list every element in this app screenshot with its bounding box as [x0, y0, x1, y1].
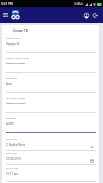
staticText: TD Start Time	[6, 167, 19, 170]
staticText: 2. Nakka Mont	[6, 143, 26, 147]
button[interactable]	[6, 75, 96, 92]
staticText: Email Mobile Number	[6, 97, 26, 100]
staticText: Process date	[6, 152, 18, 155]
staticText: Select Mode	[6, 138, 17, 141]
button[interactable]	[6, 165, 96, 181]
staticText: 27/06/2019	[6, 157, 21, 161]
staticText: Operator id	[6, 117, 17, 120]
button[interactable]: App logo	[12, 10, 19, 19]
button[interactable]	[6, 115, 96, 132]
staticText: 5:13 PM	[1, 2, 13, 6]
button[interactable]	[6, 55, 96, 72]
button[interactable]: Open navigation menu	[1, 7, 10, 23]
button[interactable]	[6, 95, 96, 112]
staticText: Create TD	[13, 29, 29, 33]
staticText: AGPIE	[6, 122, 14, 126]
button[interactable]	[6, 150, 96, 164]
staticText: ••••••••••••••••••	[6, 102, 25, 106]
staticText: Auto	[6, 82, 13, 86]
staticText: 10:11 pm	[6, 172, 19, 176]
button[interactable]	[6, 35, 96, 52]
button[interactable]: Logout	[92, 7, 99, 23]
staticText: 3.4Kb/s	[74, 2, 84, 6]
staticText: Customer Mobile Number	[6, 57, 30, 60]
staticText: Email Status	[6, 77, 17, 80]
button[interactable]: Profile	[83, 7, 90, 23]
button[interactable]	[6, 136, 96, 150]
staticText: Customer Name	[6, 37, 21, 40]
staticText: ••••••••••••••••••	[6, 62, 25, 66]
staticText: Rajappa N	[6, 42, 20, 46]
